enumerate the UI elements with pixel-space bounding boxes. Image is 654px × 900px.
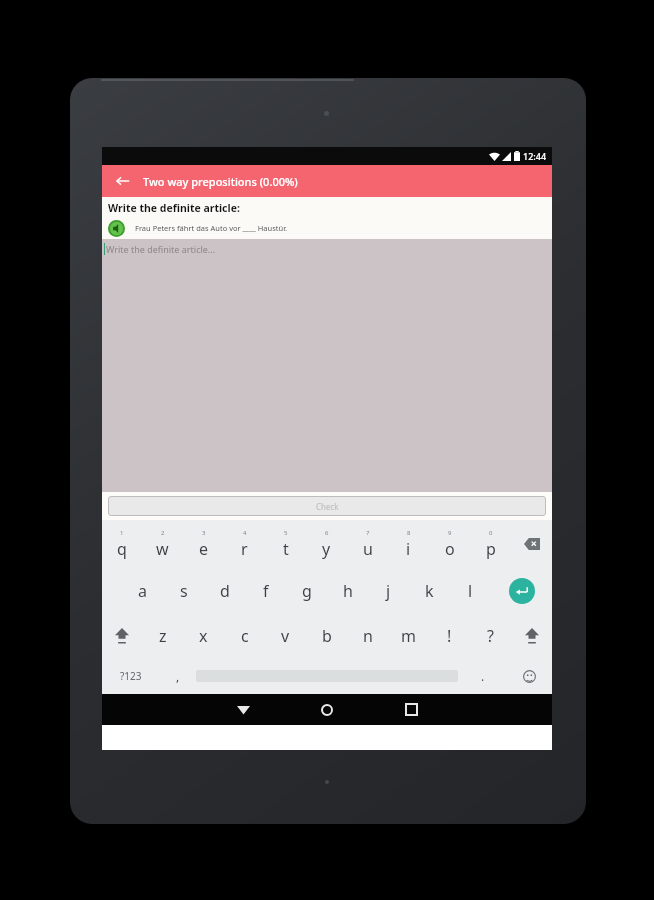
staticText: 8 <box>407 529 411 537</box>
staticText: w <box>156 538 169 560</box>
staticText: h <box>343 580 353 602</box>
staticText: ?123 <box>120 669 142 683</box>
staticText: y <box>322 538 331 560</box>
staticText: o <box>445 538 455 560</box>
button[interactable]: h <box>327 568 368 613</box>
button[interactable]: v <box>265 613 306 658</box>
button[interactable]: f <box>245 568 286 613</box>
button[interactable]: . <box>458 658 507 694</box>
button[interactable]: 3 <box>183 520 224 568</box>
staticText: b <box>322 625 332 647</box>
staticText: m <box>401 625 416 647</box>
staticText: x <box>199 625 208 647</box>
button[interactable]: n <box>347 613 388 658</box>
staticText: u <box>363 538 373 560</box>
button[interactable]: d <box>204 568 245 613</box>
staticText: 2 <box>161 529 165 537</box>
button[interactable]: , <box>159 658 196 694</box>
button[interactable]: 2 <box>142 520 183 568</box>
staticText: d <box>220 580 230 602</box>
staticText: 3 <box>202 529 206 537</box>
button[interactable]: z <box>142 613 183 658</box>
staticText: e <box>199 538 209 560</box>
button[interactable]: 6 <box>306 520 347 568</box>
staticText: v <box>281 625 290 647</box>
button[interactable]: c <box>224 613 265 658</box>
staticText: p <box>486 538 496 560</box>
staticText: q <box>117 538 127 560</box>
staticText: Write the definite article... <box>106 243 216 255</box>
button[interactable]: Check <box>108 496 546 516</box>
staticText: c <box>241 625 249 647</box>
button[interactable]: Play audio <box>107 219 125 237</box>
button[interactable]: b <box>306 613 347 658</box>
staticText: , <box>176 668 180 684</box>
staticText: z <box>159 625 167 647</box>
button[interactable]: l <box>450 568 491 613</box>
staticText: l <box>468 580 473 602</box>
staticText: f <box>263 580 269 602</box>
button[interactable]: s <box>163 568 204 613</box>
staticText: Check <box>316 501 339 512</box>
button[interactable]: j <box>368 568 409 613</box>
button[interactable]: g <box>286 568 327 613</box>
button[interactable]: ?123 <box>102 658 159 694</box>
button[interactable]: k <box>409 568 450 613</box>
staticText: 9 <box>448 529 452 537</box>
staticText: . <box>481 668 485 684</box>
button[interactable]: 0 <box>470 520 511 568</box>
button[interactable]: x <box>183 613 224 658</box>
staticText: 1 <box>120 529 124 537</box>
button[interactable]: 4 <box>224 520 265 568</box>
button[interactable]: Shift <box>511 613 552 658</box>
staticText: ? <box>487 625 494 647</box>
staticText: Two way prepositions (0.00%) <box>143 174 298 189</box>
staticText: t <box>283 538 289 560</box>
button[interactable]: m <box>388 613 429 658</box>
button[interactable]: ? <box>470 613 511 658</box>
button[interactable]: a <box>122 568 163 613</box>
staticText: i <box>406 538 411 560</box>
button[interactable]: Shift <box>102 613 142 658</box>
staticText: 6 <box>325 529 329 537</box>
staticText: 5 <box>284 529 288 537</box>
staticText: a <box>138 580 147 602</box>
staticText: r <box>241 538 248 560</box>
staticText: 12:44 <box>523 150 547 162</box>
staticText: g <box>302 580 312 602</box>
staticText: Frau Peters fährt das Auto vor ____ Haus… <box>135 223 288 233</box>
staticText: k <box>425 580 434 602</box>
button[interactable]: Back <box>201 694 285 725</box>
button[interactable]: Backspace <box>511 520 552 568</box>
button[interactable]: 9 <box>429 520 470 568</box>
staticText: 4 <box>243 529 247 537</box>
button[interactable]: Back <box>111 169 135 193</box>
button[interactable]: 7 <box>347 520 388 568</box>
button[interactable]: Recent apps <box>369 694 453 725</box>
button[interactable]: 8 <box>388 520 429 568</box>
staticText: ! <box>447 625 452 647</box>
staticText: n <box>363 625 373 647</box>
staticText: 0 <box>489 529 493 537</box>
button[interactable]: Emoji <box>507 658 552 694</box>
button[interactable]: 5 <box>265 520 306 568</box>
button[interactable]: Home <box>285 694 369 725</box>
button[interactable]: 1 <box>102 520 142 568</box>
staticText: Write the definite article: <box>108 201 240 215</box>
staticText: j <box>386 580 391 602</box>
staticText: s <box>180 580 188 602</box>
button[interactable]: Enter <box>491 568 552 613</box>
staticText: 7 <box>366 529 370 537</box>
button[interactable]: ! <box>429 613 470 658</box>
